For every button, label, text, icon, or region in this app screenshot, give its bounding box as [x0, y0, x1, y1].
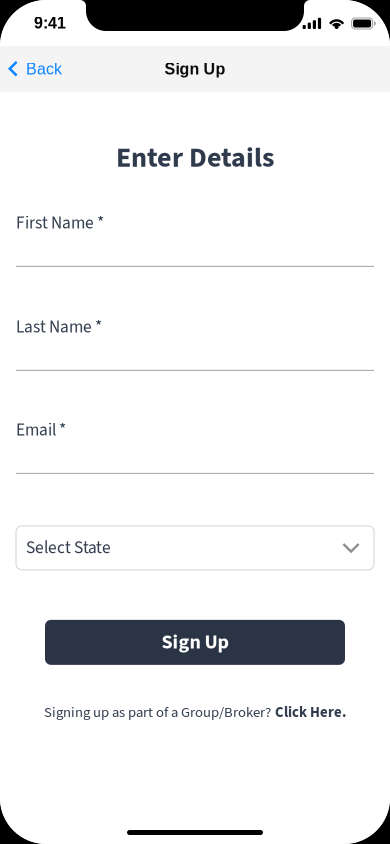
staticText: Sign Up: [161, 628, 228, 657]
button[interactable]: Click Here.: [275, 702, 346, 723]
staticText: Back: [26, 60, 62, 78]
staticText: Sign Up: [164, 60, 225, 78]
staticText: Signing up as part of a Group/Broker?: [44, 702, 271, 723]
staticText: First Name *: [16, 211, 104, 236]
staticText: Select State: [26, 535, 111, 560]
staticText: Last Name *: [16, 315, 102, 340]
staticText: Email *: [16, 418, 66, 443]
staticText: Enter Details: [116, 138, 274, 178]
staticText: Click Here.: [275, 702, 346, 723]
button[interactable]: Sign Up: [45, 620, 345, 665]
button[interactable]: Select State: [16, 526, 374, 570]
button[interactable]: Back: [0, 53, 62, 85]
staticText: 9:41: [34, 14, 66, 32]
